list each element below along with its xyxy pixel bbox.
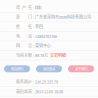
staticText: 关于我们 bbox=[75, 66, 87, 71]
staticText: bbb bbox=[35, 5, 41, 10]
button[interactable]: 修改密码 bbox=[4, 65, 30, 72]
staticText: 修改密码 bbox=[11, 66, 23, 71]
staticText: 电话 bbox=[16, 33, 32, 39]
staticText: 网点 bbox=[16, 43, 32, 49]
staticText: 退出登录 bbox=[43, 66, 55, 71]
staticText: 姓名 bbox=[16, 24, 32, 30]
staticText: 2013-11-05 18:30 bbox=[35, 88, 63, 94]
staticText: 交易明细 bbox=[48, 52, 66, 58]
staticText: 当前余额 bbox=[16, 52, 32, 58]
staticText: 89.78元 bbox=[35, 52, 48, 58]
staticText: 部门 bbox=[16, 14, 32, 20]
button[interactable]: 关于我们 bbox=[68, 65, 94, 72]
staticText: : bbox=[33, 24, 34, 30]
staticText: 营销中心 bbox=[35, 43, 51, 49]
staticText: 李四 bbox=[35, 24, 43, 30]
button[interactable]: 退出登录 bbox=[36, 65, 62, 72]
staticText: : bbox=[33, 14, 34, 20]
staticText: : bbox=[33, 33, 34, 39]
staticText: : bbox=[33, 52, 34, 58]
staticText: : bbox=[33, 88, 34, 94]
staticText: : bbox=[33, 43, 34, 49]
staticText: 广东省深圳市XXXX科技有限公司 bbox=[35, 14, 91, 20]
staticText: : bbox=[33, 5, 34, 10]
staticText: 116.25.225.79 bbox=[35, 79, 58, 85]
staticText: 13802701766 bbox=[35, 33, 57, 39]
staticText: 服务器IP bbox=[16, 79, 32, 85]
staticText: 用户名 bbox=[16, 5, 32, 10]
staticText: 最后更新 bbox=[16, 88, 32, 94]
staticText: : bbox=[33, 79, 34, 85]
